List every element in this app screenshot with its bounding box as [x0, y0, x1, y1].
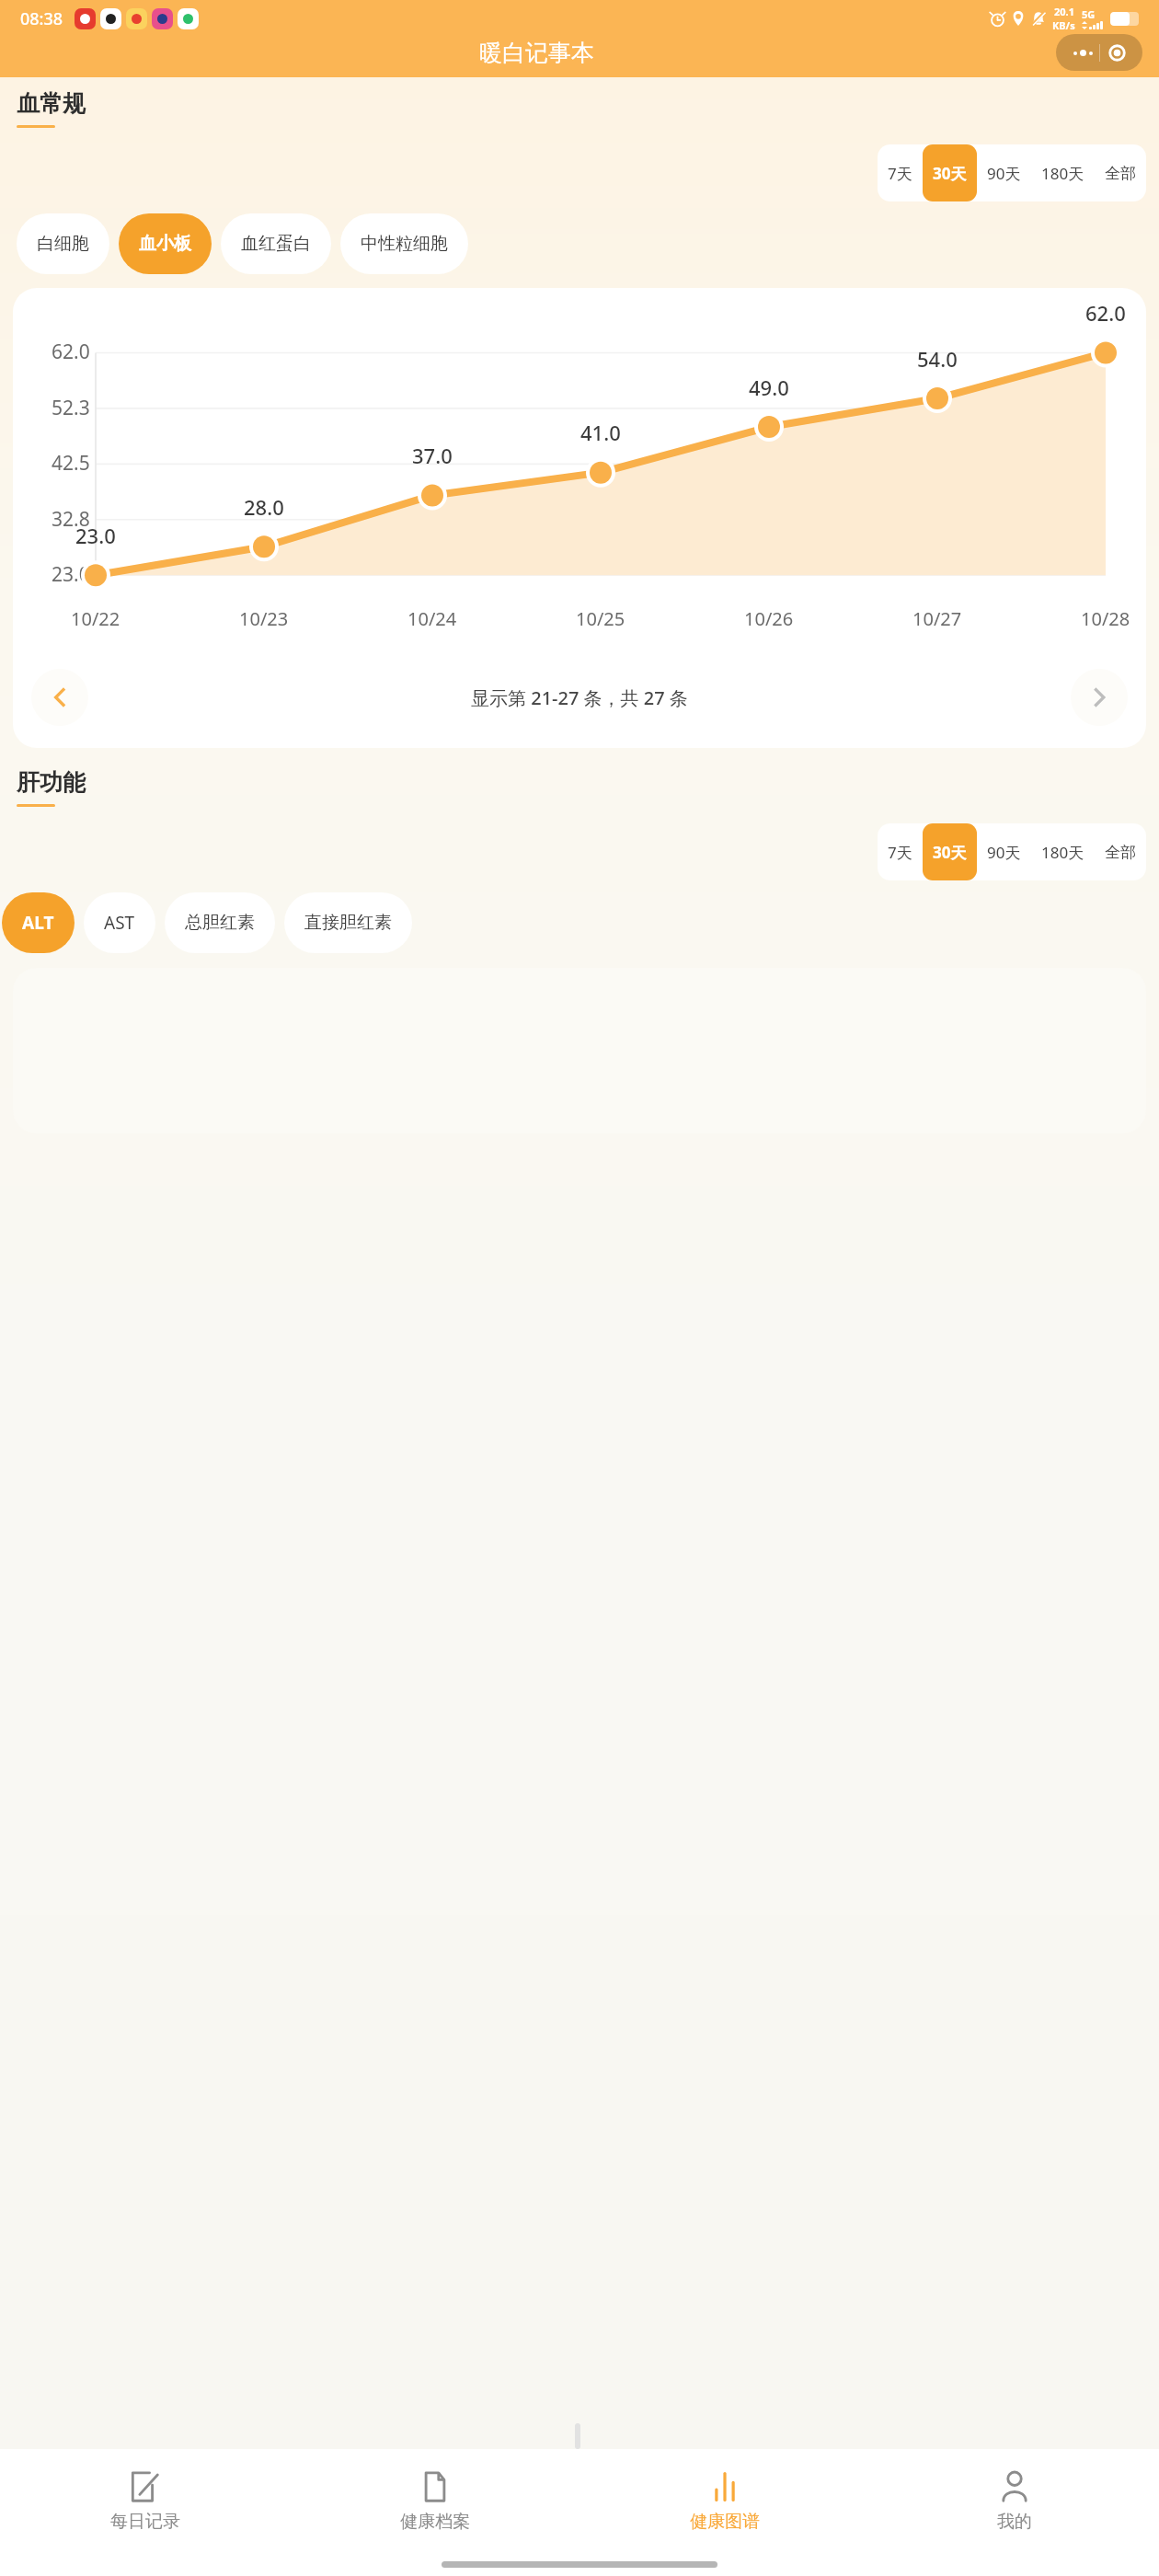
staticText: 总胆红素: [185, 912, 255, 934]
staticText: 42.5: [52, 450, 90, 477]
staticText: 10/26: [744, 606, 794, 631]
staticText: 直接胆红素: [304, 912, 392, 934]
button[interactable]: ALT: [2, 892, 75, 953]
button[interactable]: More: [1056, 34, 1142, 71]
staticText: 健康图谱: [690, 2511, 760, 2533]
staticText: 52.3: [52, 395, 90, 421]
staticText: 血红蛋白: [241, 233, 311, 255]
button[interactable]: 血红蛋白: [221, 213, 331, 274]
button[interactable]: 30天: [923, 823, 977, 880]
staticText: 30天: [933, 163, 967, 184]
staticText: 180天: [1041, 842, 1084, 863]
staticText: 41.0: [580, 419, 621, 446]
staticText: 10/24: [407, 606, 457, 631]
button[interactable]: 直接胆红素: [284, 892, 412, 953]
staticText: 10/22: [71, 606, 120, 631]
button[interactable]: 健康档案: [290, 2449, 579, 2552]
button[interactable]: Next page: [1071, 669, 1128, 726]
button[interactable]: 90天: [977, 144, 1031, 201]
button[interactable]: 全部: [1095, 823, 1146, 880]
button[interactable]: 血小板: [119, 213, 212, 274]
button[interactable]: 白细胞: [17, 213, 109, 274]
staticText: AST: [104, 911, 135, 935]
staticText: 23.0: [75, 522, 116, 549]
staticText: 全部: [1105, 164, 1136, 183]
button[interactable]: 我的: [869, 2449, 1159, 2552]
staticText: 180天: [1041, 163, 1084, 184]
staticText: 62.0: [52, 339, 90, 365]
staticText: 7天: [888, 163, 912, 184]
staticText: 全部: [1105, 843, 1136, 862]
staticText: 90天: [987, 163, 1021, 184]
staticText: ALT: [22, 911, 54, 935]
button[interactable]: 180天: [1031, 144, 1095, 201]
staticText: 血小板: [139, 233, 191, 255]
staticText: 7天: [888, 842, 912, 863]
staticText: 10/25: [576, 606, 625, 631]
staticText: 10/23: [239, 606, 289, 631]
staticText: 健康档案: [400, 2511, 470, 2533]
staticText: 10/27: [912, 606, 962, 631]
staticText: 90天: [987, 842, 1021, 863]
staticText: 08:38: [20, 7, 63, 30]
staticText: 每日记录: [110, 2511, 180, 2533]
staticText: 10/28: [1081, 606, 1130, 631]
staticText: 32.8: [52, 506, 90, 533]
button[interactable]: 每日记录: [0, 2449, 290, 2552]
staticText: 显示第 21-27 条，共 27 条: [471, 685, 688, 710]
button[interactable]: 7天: [878, 144, 923, 201]
staticText: 暖白记事本: [479, 39, 594, 67]
button[interactable]: 中性粒细胞: [340, 213, 468, 274]
staticText: 30天: [933, 842, 967, 863]
staticText: 62.0: [1085, 299, 1126, 327]
button[interactable]: 90天: [977, 823, 1031, 880]
staticText: 5G: [1082, 7, 1096, 21]
button[interactable]: AST: [84, 892, 155, 953]
button[interactable]: 180天: [1031, 823, 1095, 880]
staticText: 23.0: [52, 561, 90, 588]
staticText: 血常规: [17, 89, 86, 118]
staticText: 我的: [997, 2511, 1032, 2533]
button[interactable]: 30天: [923, 144, 977, 201]
button[interactable]: 总胆红素: [165, 892, 275, 953]
button[interactable]: 7天: [878, 823, 923, 880]
staticText: KB/s: [1052, 18, 1075, 32]
button[interactable]: 全部: [1095, 144, 1146, 201]
other: More: [1066, 50, 1099, 56]
staticText: 白细胞: [37, 233, 89, 255]
staticText: 54.0: [917, 345, 958, 373]
other: Close: [1100, 44, 1133, 62]
button[interactable]: Previous page: [31, 669, 88, 726]
staticText: 28.0: [244, 493, 284, 521]
staticText: 20.1: [1054, 5, 1074, 18]
staticText: 中性粒细胞: [361, 233, 448, 255]
staticText: 肝功能: [17, 768, 86, 797]
staticText: 49.0: [749, 374, 789, 401]
button[interactable]: 健康图谱: [579, 2449, 869, 2552]
staticText: 37.0: [412, 442, 453, 469]
